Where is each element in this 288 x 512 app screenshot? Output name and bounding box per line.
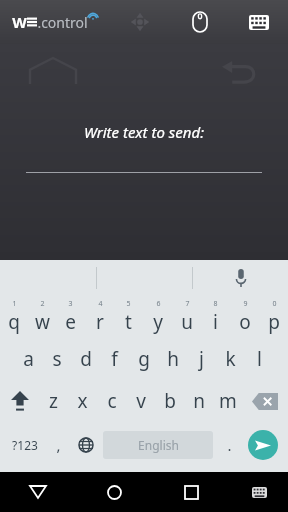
staticText: n — [193, 388, 205, 414]
staticText: Write text to send: — [84, 122, 204, 142]
button[interactable]: 9 — [230, 296, 259, 338]
staticText: l — [257, 346, 262, 372]
staticText: k — [225, 346, 236, 372]
button[interactable]: v — [126, 380, 155, 422]
button[interactable]: m — [213, 380, 242, 422]
button[interactable]: ?123 — [4, 422, 45, 468]
staticText: W — [12, 12, 27, 32]
button[interactable]: n — [184, 380, 213, 422]
button[interactable]: 7 — [172, 296, 201, 338]
staticText: 3 — [68, 299, 73, 309]
staticText: z — [49, 388, 58, 414]
button[interactable]: a — [14, 338, 42, 380]
staticText: ?123 — [12, 437, 38, 453]
staticText: q — [8, 309, 20, 335]
staticText: English — [138, 437, 179, 453]
staticText: m — [219, 388, 237, 414]
button[interactable]: j — [187, 338, 216, 380]
button[interactable]: g — [129, 338, 158, 380]
staticText: , — [56, 435, 61, 455]
button[interactable]: h — [158, 338, 187, 380]
staticText: e — [65, 309, 76, 335]
button[interactable]: Recents — [153, 472, 230, 512]
button[interactable]: , — [45, 422, 71, 468]
button[interactable]: f — [100, 338, 129, 380]
staticText: r — [96, 309, 104, 335]
button[interactable]: 5 — [114, 296, 143, 338]
button[interactable]: x — [68, 380, 97, 422]
staticText: j — [199, 346, 204, 372]
staticText: d — [80, 346, 92, 372]
button[interactable]: Shift — [0, 380, 39, 422]
button[interactable]: 4 — [85, 296, 114, 338]
staticText: t — [125, 309, 132, 335]
button[interactable]: 8 — [201, 296, 230, 338]
staticText: 0 — [272, 299, 277, 309]
button[interactable]: Home — [76, 472, 153, 512]
button[interactable]: 6 — [143, 296, 172, 338]
button[interactable]: 2 — [28, 296, 56, 338]
staticText: s — [52, 346, 62, 372]
staticText: x — [77, 388, 88, 414]
button[interactable]: Back — [0, 472, 76, 512]
staticText: b — [164, 388, 176, 414]
button[interactable]: W — [0, 0, 110, 44]
staticText: 6 — [156, 299, 161, 309]
staticText: a — [23, 346, 34, 372]
button[interactable]: Move — [110, 0, 170, 44]
staticText: y — [153, 309, 163, 335]
button[interactable]: s — [42, 338, 71, 380]
staticText: .control — [37, 13, 88, 32]
button[interactable]: . — [216, 422, 242, 468]
staticText: u — [181, 309, 193, 335]
button[interactable]: English — [103, 431, 213, 459]
button[interactable]: 0 — [259, 296, 288, 338]
staticText: c — [107, 388, 117, 414]
staticText: 9 — [243, 299, 248, 309]
staticText: v — [136, 388, 146, 414]
staticText: . — [227, 435, 232, 455]
staticText: 4 — [98, 299, 103, 309]
staticText: 8 — [213, 299, 218, 309]
staticText: h — [167, 346, 179, 372]
button[interactable]: Send — [242, 422, 284, 468]
button[interactable]: b — [155, 380, 184, 422]
button[interactable]: Voice input — [193, 260, 288, 296]
staticText: o — [239, 309, 251, 335]
staticText: w — [35, 309, 50, 335]
button[interactable]: l — [245, 338, 274, 380]
button[interactable]: Mouse — [170, 0, 229, 44]
staticText: 2 — [40, 299, 45, 309]
button[interactable]: Backspace — [242, 380, 288, 422]
button[interactable]: d — [71, 338, 100, 380]
staticText: p — [268, 309, 280, 335]
staticText: i — [213, 309, 218, 335]
button[interactable]: Language — [71, 422, 100, 468]
button[interactable]: k — [216, 338, 245, 380]
staticText: 5 — [126, 299, 131, 309]
button[interactable]: c — [97, 380, 126, 422]
button[interactable]: 1 — [0, 296, 28, 338]
button[interactable]: Change keyboard — [230, 472, 288, 512]
staticText: f — [111, 346, 118, 372]
staticText: g — [138, 346, 150, 372]
button[interactable]: Keyboard — [229, 0, 288, 44]
button[interactable]: 3 — [56, 296, 85, 338]
staticText: 7 — [185, 299, 190, 309]
staticText: 1 — [12, 299, 17, 309]
button[interactable]: z — [39, 380, 68, 422]
